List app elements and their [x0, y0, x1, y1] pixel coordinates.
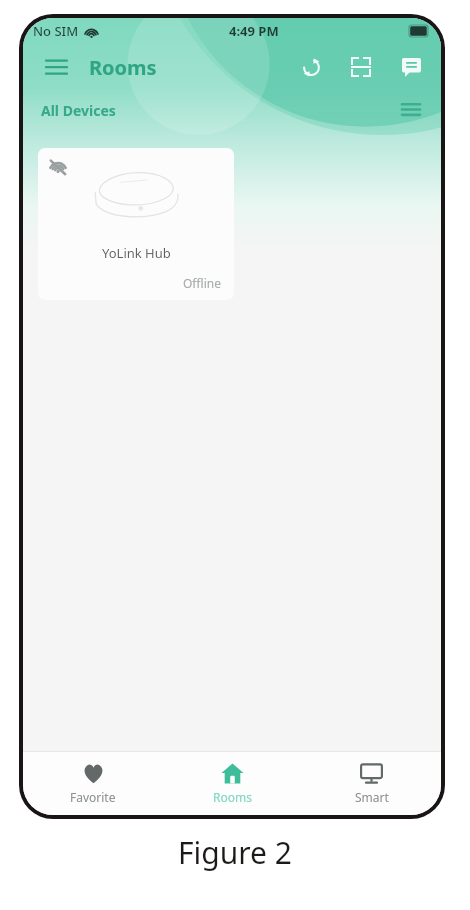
button[interactable]: Refresh [293, 49, 329, 85]
button[interactable]: Messages [393, 49, 429, 85]
staticText: Rooms [213, 789, 252, 805]
staticText: All Devices [41, 101, 116, 120]
staticText: Rooms [89, 54, 157, 81]
button[interactable]: Sort devices [397, 96, 425, 124]
button[interactable]: Favorite [23, 752, 163, 815]
staticText: Offline [183, 275, 222, 291]
staticText: No SIM [33, 22, 79, 40]
button[interactable]: Rooms [163, 752, 302, 815]
button[interactable]: YoLink Hub [38, 148, 234, 300]
button[interactable]: Scan [343, 49, 379, 85]
button[interactable]: Smart [302, 752, 441, 815]
staticText: Figure 2 [178, 832, 292, 873]
staticText: Smart [355, 789, 389, 805]
staticText: YoLink Hub [102, 244, 171, 262]
staticText: 4:49 PM [229, 22, 279, 40]
button[interactable]: Menu [41, 52, 71, 82]
staticText: Favorite [70, 789, 116, 805]
